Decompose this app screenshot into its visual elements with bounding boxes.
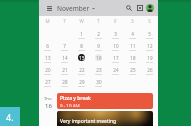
- staticText: S: [148, 18, 151, 24]
- button[interactable]: 2: [90, 30, 107, 42]
- button[interactable]: 25: [124, 66, 141, 78]
- staticText: November: [57, 4, 90, 13]
- staticText: 7: [63, 43, 66, 49]
- staticText: 23: [96, 67, 102, 73]
- staticText: 22: [79, 67, 85, 73]
- button[interactable]: 4.: [0, 107, 20, 126]
- button[interactable]: 4: [124, 30, 141, 42]
- staticText: 11: [130, 43, 136, 49]
- button[interactable]: 20: [39, 66, 56, 78]
- button[interactable]: Menu: [44, 3, 54, 13]
- button[interactable]: 9: [90, 42, 107, 54]
- staticText: 4.: [6, 111, 14, 123]
- staticText: 3: [114, 31, 117, 37]
- staticText: 17: [113, 55, 119, 61]
- staticText: 5: [148, 31, 151, 37]
- staticText: 10: [113, 43, 119, 49]
- staticText: 18: [130, 55, 136, 61]
- button[interactable]: Search: [124, 3, 134, 13]
- staticText: 6: [46, 43, 49, 49]
- staticText: 30: [96, 79, 102, 85]
- button[interactable]: 17: [107, 54, 124, 66]
- button[interactable]: 12: [141, 42, 158, 54]
- staticText: 13: [45, 55, 51, 61]
- button[interactable]: 11: [124, 42, 141, 54]
- staticText: 12: [147, 43, 153, 49]
- staticText: 1: [80, 31, 83, 37]
- staticText: 15: [79, 55, 85, 61]
- button[interactable]: Today: [135, 3, 145, 13]
- staticText: 25: [130, 67, 136, 73]
- button[interactable]: 23: [90, 66, 107, 78]
- button[interactable]: November: [57, 2, 95, 15]
- button[interactable]: 15: [73, 54, 90, 66]
- button[interactable]: Account: [146, 4, 154, 12]
- staticText: 26: [147, 67, 153, 73]
- staticText: 8: [80, 43, 83, 49]
- staticText: M: [45, 18, 50, 24]
- staticText: 2: [97, 31, 100, 37]
- button[interactable]: Very important meeting: [57, 111, 153, 126]
- staticText: F: [114, 18, 117, 24]
- staticText: 4: [131, 31, 134, 37]
- button[interactable]: 8: [73, 42, 90, 54]
- button[interactable]: 27: [39, 78, 56, 90]
- staticText: Pizza y break: [60, 95, 91, 102]
- button[interactable]: 10: [107, 42, 124, 54]
- button[interactable]: 24: [107, 66, 124, 78]
- button[interactable]: 28: [56, 78, 73, 90]
- button[interactable]: 19: [141, 54, 158, 66]
- staticText: Thu: [44, 96, 52, 102]
- staticText: 19: [147, 55, 153, 61]
- button[interactable]: 30: [90, 78, 107, 90]
- staticText: S: [131, 18, 134, 24]
- button[interactable]: 22: [73, 66, 90, 78]
- staticText: 14: [62, 55, 68, 61]
- button[interactable]: 3: [107, 30, 124, 42]
- staticText: W: [79, 18, 84, 24]
- staticText: 24: [113, 67, 119, 73]
- button[interactable]: 7: [56, 42, 73, 54]
- button[interactable]: 26: [141, 66, 158, 78]
- staticText: 9: [97, 43, 100, 49]
- staticText: 9 - 10 AM: [60, 103, 80, 107]
- button[interactable]: 16: [90, 54, 107, 66]
- staticText: 29: [79, 79, 85, 85]
- staticText: 21: [62, 67, 68, 73]
- button[interactable]: Pizza y break: [57, 93, 153, 109]
- staticText: 28: [62, 79, 68, 85]
- button[interactable]: 18: [124, 54, 141, 66]
- staticText: 20: [45, 67, 51, 73]
- staticText: 16: [45, 102, 52, 110]
- staticText: T: [97, 18, 100, 24]
- button[interactable]: 14: [56, 54, 73, 66]
- staticText: T: [63, 18, 66, 24]
- staticText: 27: [45, 79, 51, 85]
- staticText: Very important meeting: [60, 118, 117, 125]
- button[interactable]: 6: [39, 42, 56, 54]
- button[interactable]: 5: [141, 30, 158, 42]
- button[interactable]: 21: [56, 66, 73, 78]
- button[interactable]: 29: [73, 78, 90, 90]
- button[interactable]: 13: [39, 54, 56, 66]
- button[interactable]: 1: [73, 30, 90, 42]
- staticText: 16: [96, 55, 102, 61]
